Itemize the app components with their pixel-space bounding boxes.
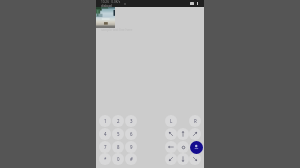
button[interactable]: 0 — [112, 153, 124, 165]
button[interactable]: 6 — [125, 128, 137, 140]
button[interactable]: sample text line here — [101, 28, 133, 32]
button[interactable]: 7 — [99, 141, 111, 153]
button[interactable]: Select — [177, 141, 189, 153]
staticText: R — [194, 118, 197, 124]
button[interactable]: L — [165, 115, 177, 127]
button[interactable]: 3 — [125, 115, 137, 127]
button[interactable]: 9 — [125, 141, 137, 153]
staticText: 6 — [130, 131, 133, 137]
staticText: sample text line here — [101, 28, 133, 32]
staticText: 5 — [117, 131, 120, 137]
button[interactable]: Photo thumbnail — [96, 7, 115, 28]
staticText: 4 — [104, 131, 107, 137]
staticText: 9 — [130, 144, 133, 150]
staticText: 3 — [130, 118, 133, 124]
staticText: 7 — [104, 144, 107, 150]
staticText: 2 — [117, 118, 120, 124]
button[interactable]: Up left — [165, 128, 177, 140]
staticText: 0 — [117, 156, 120, 162]
button[interactable]: 1 — [99, 115, 111, 127]
button[interactable]: Up right — [189, 128, 201, 140]
button[interactable]: Down — [177, 153, 189, 165]
button[interactable]: Call contact — [190, 141, 203, 154]
staticText: 1 — [104, 118, 107, 124]
button[interactable]: Left — [165, 141, 177, 153]
button[interactable]: Right — [189, 141, 201, 153]
button[interactable]: Up — [177, 128, 189, 140]
staticText: * — [104, 156, 107, 162]
button[interactable]: 4 — [99, 128, 111, 140]
button[interactable]: R — [189, 115, 201, 127]
staticText: # — [130, 156, 133, 162]
staticText: L — [170, 118, 173, 124]
button[interactable]: 8 — [112, 141, 124, 153]
staticText: dialpad — [101, 4, 112, 7]
button[interactable]: # — [125, 153, 137, 165]
staticText: 8 — [117, 144, 120, 150]
button[interactable]: 2 — [112, 115, 124, 127]
button[interactable]: Down left — [165, 153, 177, 165]
button[interactable]: * — [99, 153, 111, 165]
staticText: 10:26 0.0K/s — [101, 0, 121, 4]
button[interactable]: Down right — [189, 153, 201, 165]
button[interactable]: 5 — [112, 128, 124, 140]
button[interactable]: Battery — [190, 2, 194, 5]
